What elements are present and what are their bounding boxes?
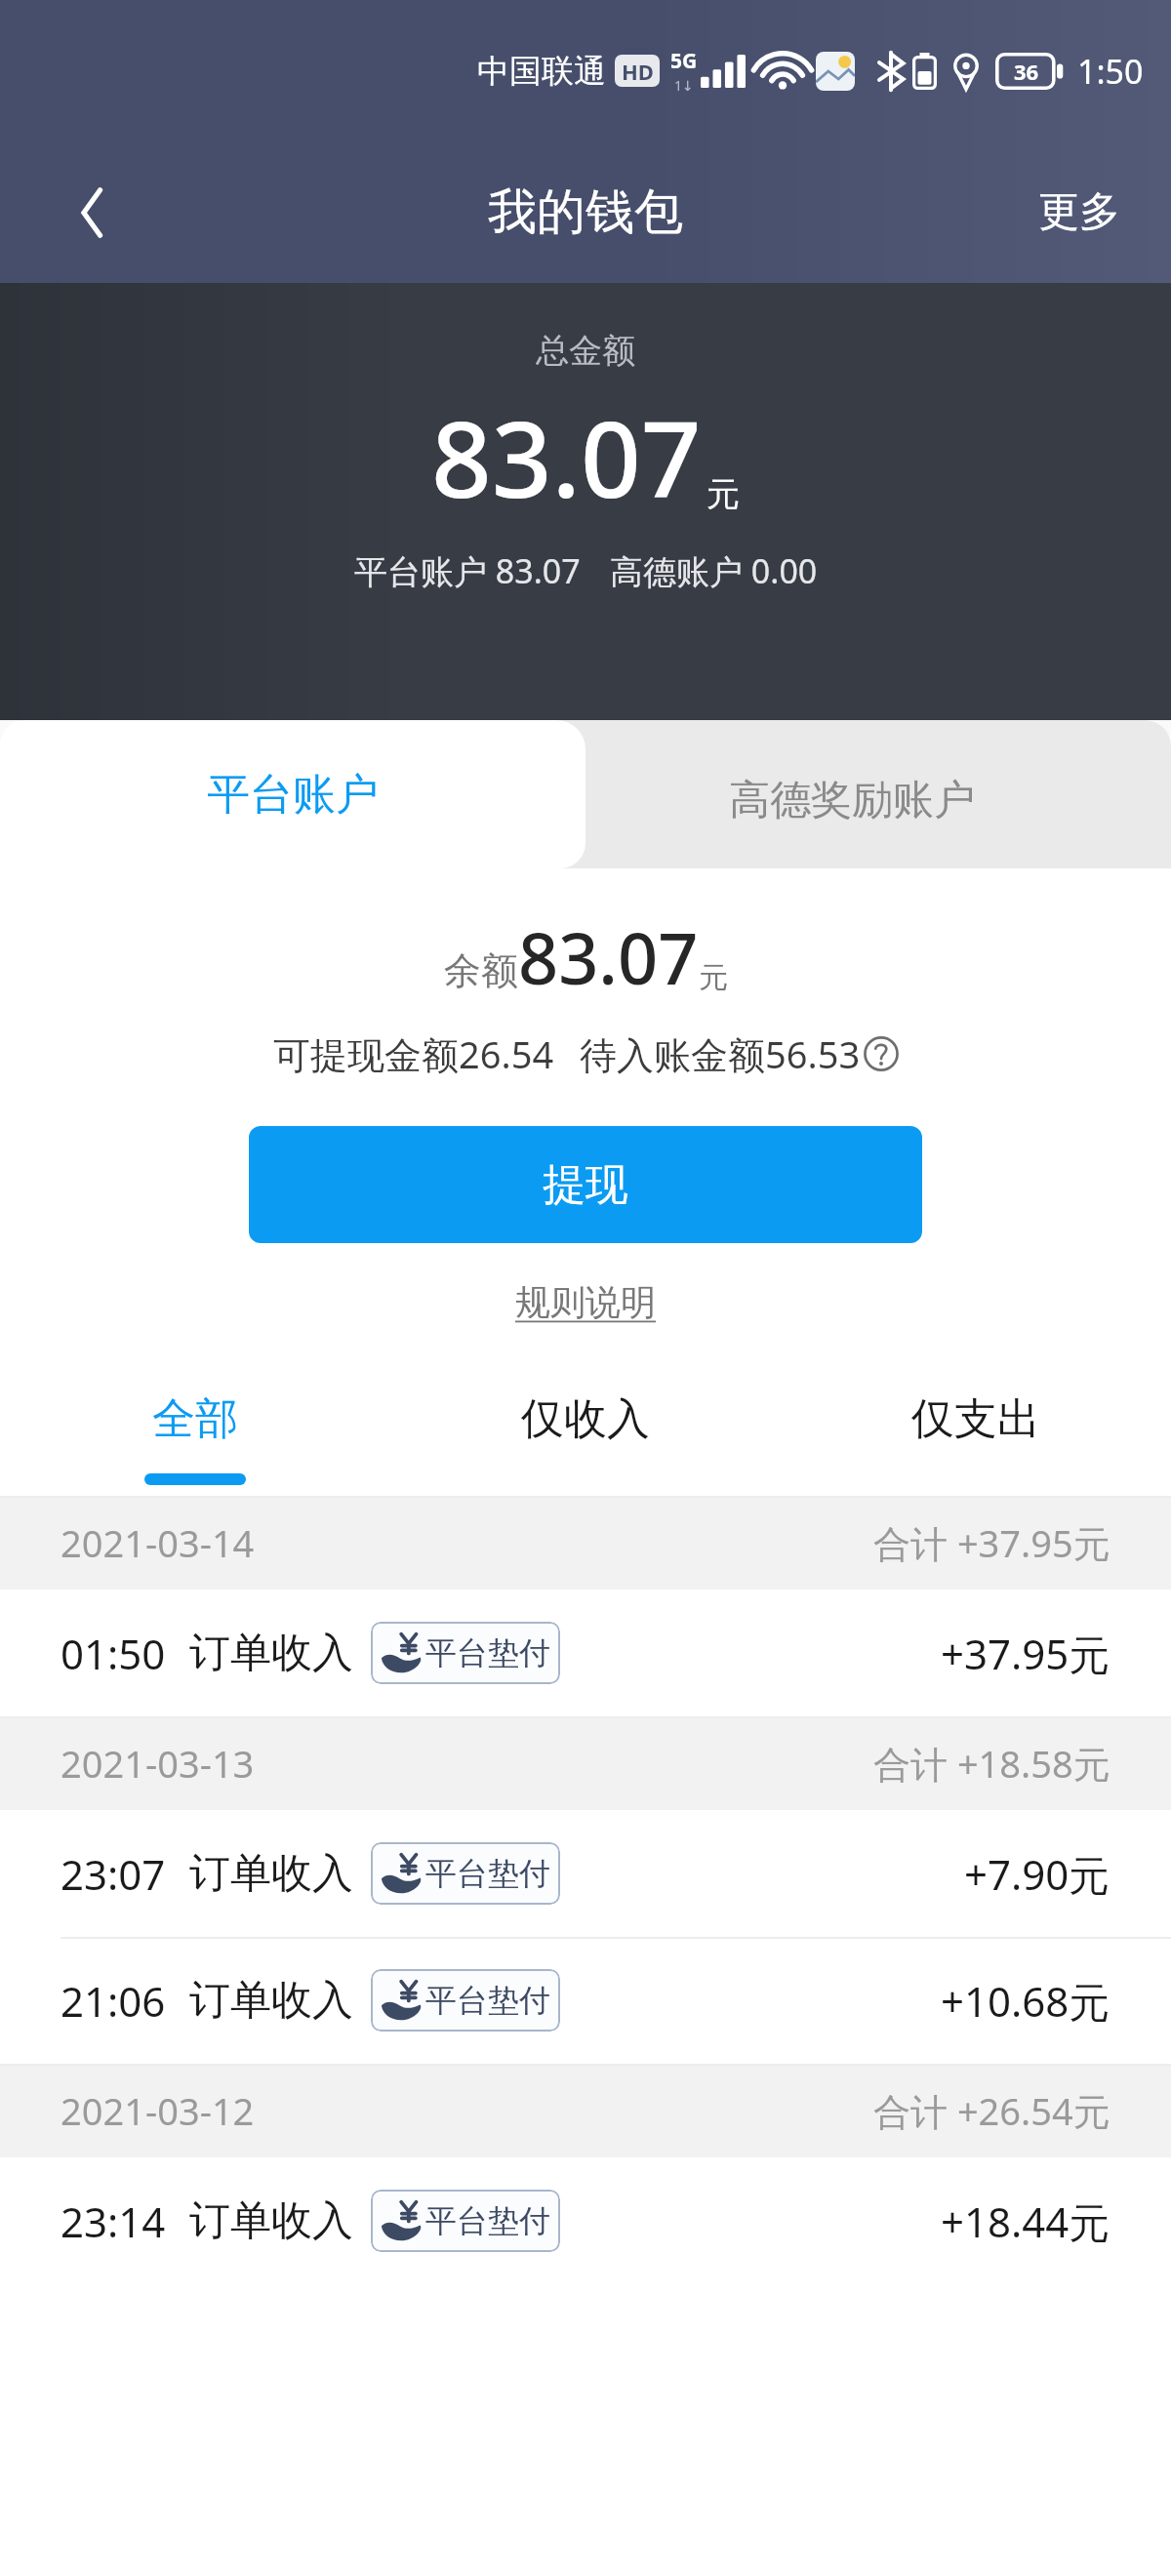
- staticText: 高德奖励账户: [729, 775, 975, 826]
- button[interactable]: 23:14: [0, 2157, 1171, 2284]
- staticText: 01:50: [61, 1626, 166, 1681]
- staticText: 全部: [152, 1392, 238, 1446]
- staticText: 23:07: [61, 1846, 166, 1902]
- button[interactable]: 高德奖励账户: [533, 720, 1171, 868]
- button[interactable]: 仅收入: [390, 1379, 781, 1496]
- staticText: 合计 +18.58元: [873, 1738, 1110, 1789]
- staticText: 23:14: [61, 2194, 166, 2249]
- staticText: 可提现金额26.54: [273, 1028, 554, 1079]
- button[interactable]: 01:50: [0, 1590, 1171, 1716]
- button[interactable]: 返回: [57, 177, 129, 249]
- staticText: 订单收入: [189, 1975, 353, 2027]
- staticText: 元: [699, 959, 728, 996]
- staticText: 高德账户 0.00: [610, 548, 818, 593]
- staticText: 订单收入: [189, 2195, 353, 2247]
- staticText: 我的钱包: [488, 181, 683, 243]
- staticText: 平台垫付: [425, 1981, 550, 2020]
- staticText: 元: [707, 473, 740, 515]
- staticText: 订单收入: [189, 1848, 353, 1900]
- staticText: 平台垫付: [425, 1633, 550, 1672]
- button[interactable]: 更多: [1027, 173, 1132, 252]
- staticText: 总金额: [536, 330, 635, 372]
- staticText: HD: [622, 57, 654, 86]
- staticText: +37.95元: [941, 1626, 1110, 1681]
- staticText: 合计 +26.54元: [873, 2085, 1110, 2136]
- staticText: 平台账户 83.07: [354, 548, 581, 593]
- staticText: 平台垫付: [425, 2201, 550, 2240]
- button[interactable]: 21:06: [0, 1937, 1171, 2064]
- button[interactable]: 提现: [249, 1126, 922, 1243]
- button[interactable]: 仅支出: [781, 1379, 1171, 1496]
- staticText: 2021-03-14: [61, 1517, 255, 1568]
- staticText: 1:50: [1077, 49, 1144, 94]
- staticText: 余额: [444, 947, 518, 994]
- staticText: 订单收入: [189, 1628, 353, 1679]
- button[interactable]: 全部: [0, 1379, 390, 1496]
- staticText: 平台垫付: [425, 1854, 550, 1893]
- staticText: 更多: [1038, 186, 1120, 238]
- button[interactable]: 说明: [864, 1036, 899, 1071]
- staticText: +18.44元: [941, 2194, 1110, 2249]
- staticText: 提现: [543, 1158, 628, 1212]
- staticText: 5G: [670, 47, 698, 75]
- staticText: +7.90元: [964, 1846, 1110, 1902]
- staticText: 合计 +37.95元: [873, 1517, 1110, 1568]
- staticText: 83.07: [518, 909, 699, 1005]
- staticText: 仅支出: [911, 1392, 1040, 1446]
- button[interactable]: 23:07: [0, 1810, 1171, 1937]
- staticText: 待入账金额56.53: [580, 1028, 861, 1079]
- button[interactable]: 规则说明: [505, 1276, 666, 1328]
- staticText: 83.07: [431, 385, 702, 529]
- staticText: 2021-03-12: [61, 2085, 255, 2136]
- staticText: 21:06: [61, 1973, 166, 2029]
- staticText: 2021-03-13: [61, 1738, 255, 1789]
- button[interactable]: 平台账户: [0, 720, 585, 868]
- staticText: 规则说明: [515, 1280, 656, 1324]
- staticText: 中国联通: [477, 51, 606, 92]
- staticText: 仅收入: [521, 1392, 650, 1446]
- staticText: 平台账户: [207, 768, 379, 822]
- staticText: 1↓: [674, 76, 694, 95]
- staticText: +10.68元: [941, 1973, 1110, 2029]
- staticText: 36: [1014, 57, 1039, 86]
